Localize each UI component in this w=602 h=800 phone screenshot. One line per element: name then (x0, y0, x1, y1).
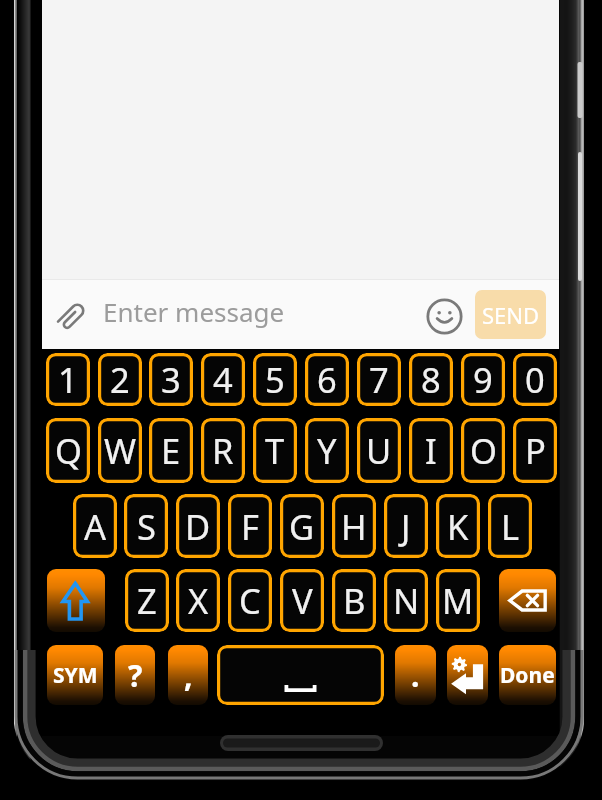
staticText: 7 (369, 356, 389, 403)
staticText: 1 (58, 356, 78, 403)
button[interactable]: 5 (253, 353, 297, 406)
staticText: , (184, 655, 193, 696)
staticText: K (447, 503, 469, 550)
button[interactable]: SYM (47, 645, 103, 705)
staticText: H (341, 503, 367, 550)
staticText: F (241, 503, 259, 550)
button[interactable]: Done (499, 645, 556, 705)
button[interactable]: W (98, 418, 142, 483)
button[interactable]: C (228, 569, 272, 632)
staticText: SYM (53, 661, 98, 690)
button[interactable]: P (513, 418, 557, 483)
staticText: 6 (317, 356, 337, 403)
staticText: 3 (161, 356, 181, 403)
button[interactable]: Q (46, 418, 90, 483)
staticText: 5 (265, 356, 285, 403)
button[interactable]: SEND (475, 290, 546, 339)
staticText: J (401, 503, 411, 550)
staticText: 9 (473, 356, 493, 403)
button[interactable]: 9 (461, 353, 505, 406)
button[interactable]: T (253, 418, 297, 483)
button[interactable]: 8 (409, 353, 453, 406)
staticText: U (366, 427, 392, 474)
staticText: C (239, 577, 261, 624)
button[interactable]: R (201, 418, 245, 483)
button[interactable]: 3 (149, 353, 193, 406)
staticText: Q (55, 427, 82, 474)
staticText: M (442, 577, 474, 624)
staticText: SEND (482, 300, 540, 330)
staticText: Y (317, 427, 337, 474)
button[interactable]: Attach file (57, 300, 88, 331)
button[interactable]: U (357, 418, 401, 483)
button[interactable]: I (409, 418, 453, 483)
button[interactable]: G (280, 494, 324, 558)
staticText: T (265, 427, 285, 474)
button[interactable]: A (73, 494, 117, 558)
staticText: S (137, 503, 156, 550)
button[interactable]: K (436, 494, 480, 558)
button[interactable]: . (395, 645, 436, 705)
staticText: I (425, 427, 437, 474)
button[interactable]: Emoji (426, 298, 463, 335)
staticText: X (188, 577, 209, 624)
button[interactable]: B (332, 569, 376, 632)
button[interactable]: Space (217, 645, 384, 705)
staticText: R (212, 427, 234, 474)
button[interactable]: Shift (47, 569, 105, 632)
staticText: Z (137, 577, 157, 624)
staticText: W (104, 427, 137, 474)
button[interactable]: 1 (46, 353, 90, 406)
staticText: O (470, 427, 497, 474)
staticText: E (161, 427, 181, 474)
staticText: . (411, 655, 420, 696)
button[interactable]: Backspace (499, 569, 556, 632)
staticText: B (343, 577, 366, 624)
staticText: ? (128, 655, 143, 696)
staticText: V (292, 577, 313, 624)
button[interactable]: M (436, 569, 480, 632)
button[interactable]: Z (125, 569, 169, 632)
button[interactable]: O (461, 418, 505, 483)
staticText: 8 (421, 356, 441, 403)
staticText: Done (500, 661, 555, 690)
button[interactable]: 0 (513, 353, 557, 406)
button[interactable]: 2 (98, 353, 142, 406)
staticText: A (84, 503, 107, 550)
staticText: N (393, 577, 420, 624)
staticText: G (289, 503, 315, 550)
button[interactable]: J (384, 494, 428, 558)
button[interactable]: 7 (357, 353, 401, 406)
staticText: D (185, 503, 211, 550)
button[interactable]: F (228, 494, 272, 558)
button[interactable]: , (168, 645, 208, 705)
staticText: 0 (525, 356, 545, 403)
button[interactable]: H (332, 494, 376, 558)
button[interactable]: E (149, 418, 193, 483)
button[interactable]: ? (115, 645, 155, 705)
staticText: L (501, 503, 520, 550)
staticText: P (525, 427, 546, 474)
button[interactable]: X (176, 569, 220, 632)
button[interactable]: S (124, 494, 168, 558)
staticText: 4 (213, 356, 233, 403)
button[interactable]: Y (305, 418, 349, 483)
button[interactable]: N (384, 569, 428, 632)
button[interactable]: 6 (305, 353, 349, 406)
staticText: 2 (110, 356, 130, 403)
staticText: Enter message (103, 294, 285, 329)
button[interactable]: V (280, 569, 324, 632)
button[interactable]: Enter (447, 645, 488, 705)
button[interactable]: D (176, 494, 220, 558)
button[interactable]: 4 (201, 353, 245, 406)
button[interactable]: L (488, 494, 532, 558)
